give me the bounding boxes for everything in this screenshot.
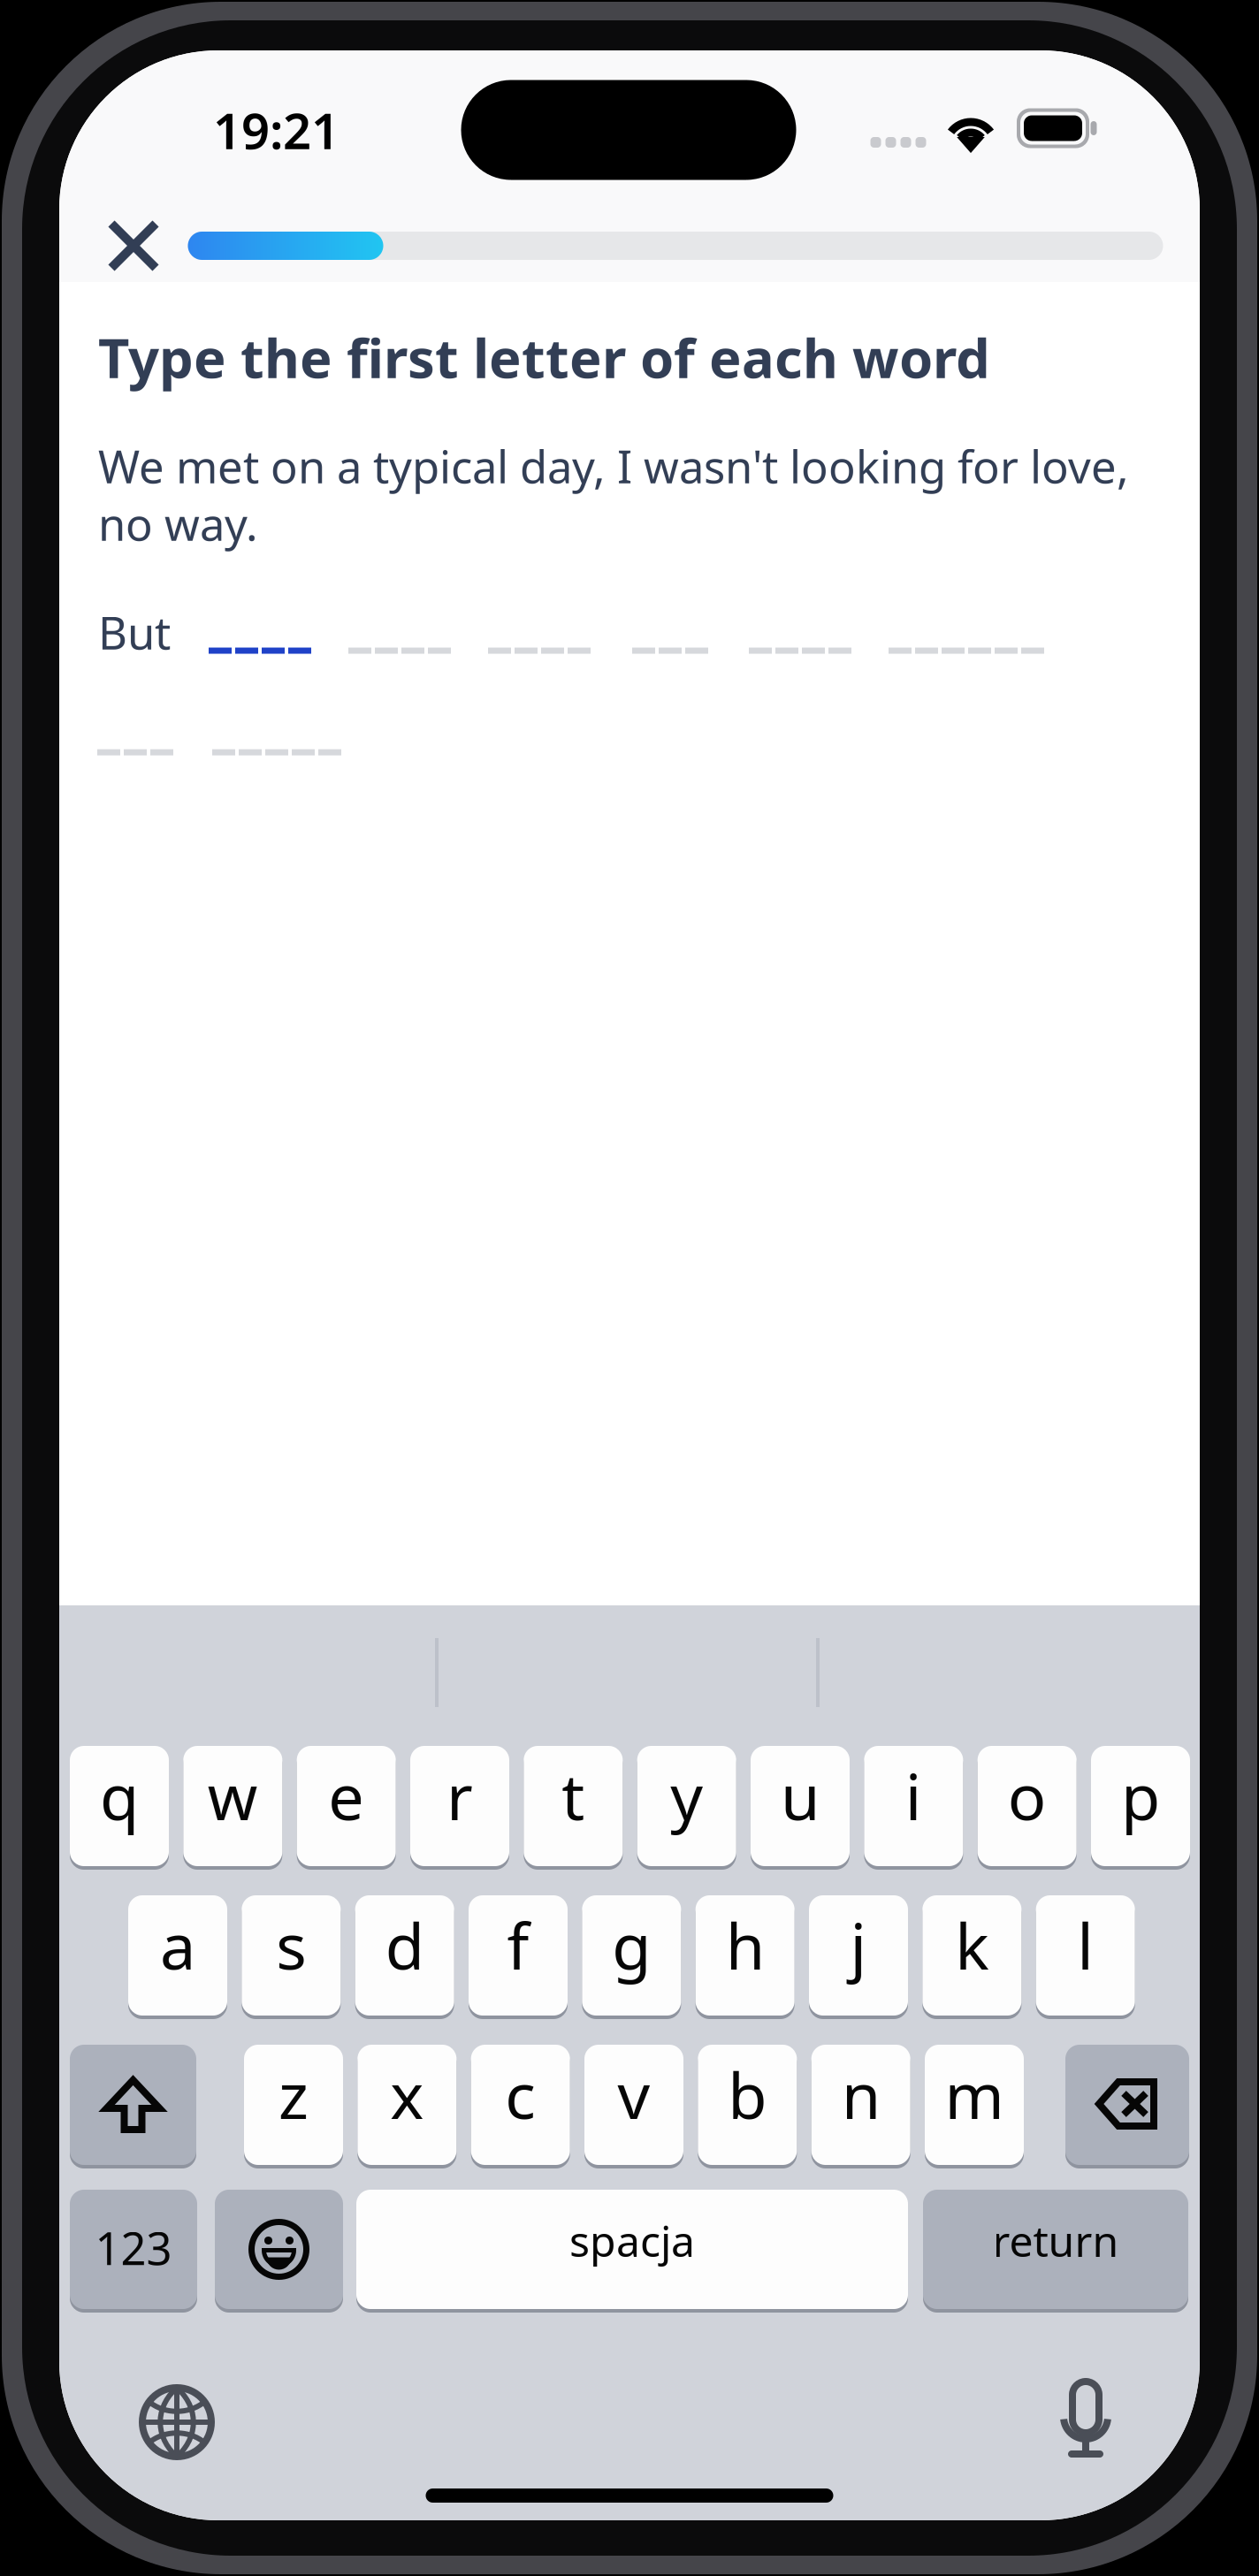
button[interactable]: Delete [1065, 2043, 1189, 2167]
button[interactable]: k [922, 1894, 1021, 2017]
staticText: n [841, 2052, 880, 2136]
staticText: y [670, 1753, 703, 1838]
staticText: x [390, 2052, 424, 2136]
staticText: q [100, 1753, 139, 1838]
button[interactable]: g [582, 1894, 681, 2017]
button[interactable]: p [1091, 1744, 1190, 1868]
staticText: o [1008, 1753, 1047, 1838]
staticText: spacja [569, 2212, 695, 2269]
button[interactable]: i [864, 1744, 963, 1868]
button[interactable]: r [410, 1744, 509, 1868]
button[interactable]: m [925, 2043, 1024, 2167]
staticText: u [781, 1753, 820, 1838]
button[interactable]: 123 [70, 2188, 197, 2311]
staticText: c [505, 2052, 536, 2136]
button[interactable]: e [297, 1744, 396, 1868]
staticText: return [992, 2212, 1119, 2269]
button[interactable]: f [469, 1894, 568, 2017]
staticText: 19:21 [213, 97, 340, 163]
button[interactable]: j [809, 1894, 908, 2017]
button[interactable]: spacja [356, 2188, 908, 2311]
staticText: Type the first letter of each word [98, 321, 990, 393]
button[interactable]: z [244, 2043, 343, 2167]
button[interactable]: t [524, 1744, 623, 1868]
staticText: g [612, 1903, 651, 1987]
button[interactable]: Close [87, 199, 180, 293]
staticText: no way. [98, 494, 258, 553]
button[interactable]: y [637, 1744, 736, 1868]
staticText: i [905, 1753, 922, 1838]
button[interactable]: a [128, 1894, 227, 2017]
staticText: k [955, 1903, 989, 1987]
staticText: e [328, 1753, 364, 1838]
button[interactable]: l [1036, 1894, 1135, 2017]
button[interactable]: q [70, 1744, 169, 1868]
button[interactable]: return [923, 2188, 1188, 2311]
staticText: f [507, 1903, 529, 1987]
staticText: s [276, 1903, 306, 1987]
staticText: w [208, 1753, 258, 1838]
button[interactable]: h [696, 1894, 795, 2017]
staticText: j [850, 1903, 867, 1987]
button[interactable]: Switch keyboard [133, 2378, 221, 2466]
staticText: z [279, 2052, 309, 2136]
staticText: r [446, 1753, 473, 1838]
button[interactable]: Dictate [1042, 2374, 1130, 2465]
staticText: But [98, 602, 171, 662]
staticText: 123 [95, 2218, 172, 2277]
button[interactable]: d [355, 1894, 454, 2017]
staticText: b [728, 2052, 767, 2136]
staticText: l [1077, 1903, 1094, 1987]
staticText: h [726, 1903, 765, 1987]
staticText: p [1121, 1753, 1160, 1838]
staticText: a [160, 1903, 195, 1987]
button[interactable]: w [183, 1744, 282, 1868]
button[interactable]: b [698, 2043, 797, 2167]
button[interactable]: x [357, 2043, 456, 2167]
staticText: m [945, 2052, 1004, 2136]
button[interactable]: Emoji [215, 2188, 343, 2311]
button[interactable]: o [978, 1744, 1077, 1868]
staticText: d [385, 1903, 424, 1987]
button[interactable]: s [242, 1894, 341, 2017]
button[interactable]: v [584, 2043, 683, 2167]
button[interactable]: u [751, 1744, 850, 1868]
button[interactable]: Shift [70, 2043, 196, 2167]
staticText: v [618, 2052, 650, 2136]
staticText: We met on a typical day, I wasn't lookin… [98, 436, 1129, 496]
staticText: t [562, 1753, 585, 1838]
button[interactable]: c [471, 2043, 570, 2167]
button[interactable]: n [811, 2043, 910, 2167]
